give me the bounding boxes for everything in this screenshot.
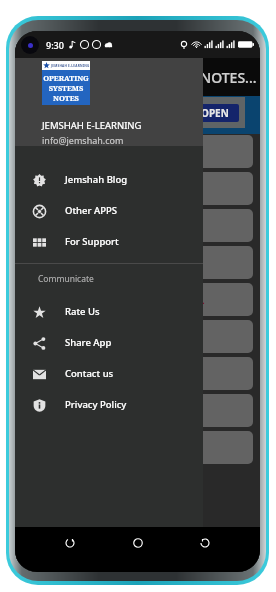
button[interactable]: Recents: [57, 530, 83, 556]
button[interactable]: [15, 31, 260, 572]
staticText: JEMSHAH E-LEARNING: [42, 119, 142, 132]
button[interactable]: PROCESS SYNCHRONIZATION ALL: [22, 283, 253, 316]
staticText: Other APPS: [65, 204, 118, 217]
button[interactable]: OPERATING SYSTEM: [22, 172, 253, 205]
staticText: PROCESS SYNCHRONIZATION ALL: [31, 293, 205, 307]
staticText: Privacy Policy: [65, 398, 127, 411]
staticText: info@jemshah.com: [42, 134, 124, 146]
button[interactable]: PROCESS MANAGEMENT CLASSES: [22, 209, 253, 242]
staticText: DEADLOCKS: [31, 330, 93, 344]
staticText: OPERATING SYSTEMS NOTES...: [55, 68, 257, 87]
staticText: INTRODUCTION: [31, 145, 115, 159]
staticText: CPU SCHEDULING OF DATABASE: [31, 256, 196, 270]
staticText: MEMORY MANAGEMENT: [31, 367, 158, 381]
button[interactable]: Privacy Policy: [15, 389, 203, 420]
button[interactable]: INTRODUCTION: [22, 135, 253, 168]
staticText: For Support: [65, 235, 119, 248]
button[interactable]: Share App: [15, 327, 203, 358]
button[interactable]: MEMORY MANAGEMENT: [22, 357, 253, 390]
staticText: JEMSHAH E-LEARNING: [51, 64, 90, 68]
staticText: OPEN: [201, 106, 229, 120]
button[interactable]: Open navigation drawer: [21, 64, 47, 90]
button[interactable]: VIRTUAL MEMORY: [22, 394, 253, 427]
staticText: Communicate: [38, 273, 94, 285]
button[interactable]: Home: [125, 530, 151, 556]
button[interactable]: Contact us: [15, 358, 203, 389]
button[interactable]: CPU SCHEDULING OF DATABASE: [22, 246, 253, 279]
staticText: 9:30: [46, 39, 64, 51]
staticText: Contact us: [65, 367, 114, 380]
button[interactable]: Back: [192, 530, 218, 556]
staticText: Jemshah Blog: [65, 173, 128, 186]
button[interactable]: For Support: [15, 226, 203, 257]
button[interactable]: Other APPS: [15, 195, 203, 226]
button[interactable]: OPEN: [15, 97, 245, 128]
button[interactable]: Jemshah Blog: [15, 164, 203, 195]
staticText: VIRTUAL MEMORY: [31, 404, 127, 418]
staticText: Rate Us: [65, 305, 100, 318]
button[interactable]: FILE SYSTEM: [22, 431, 253, 464]
staticText: Share App: [65, 336, 112, 349]
staticText: OPERATING SYSTEMS NOTES: [43, 73, 89, 103]
staticText: OPERATING SYSTEM: [31, 182, 135, 196]
button[interactable]: Rate Us: [15, 296, 203, 327]
button[interactable]: DEADLOCKS: [22, 320, 253, 353]
